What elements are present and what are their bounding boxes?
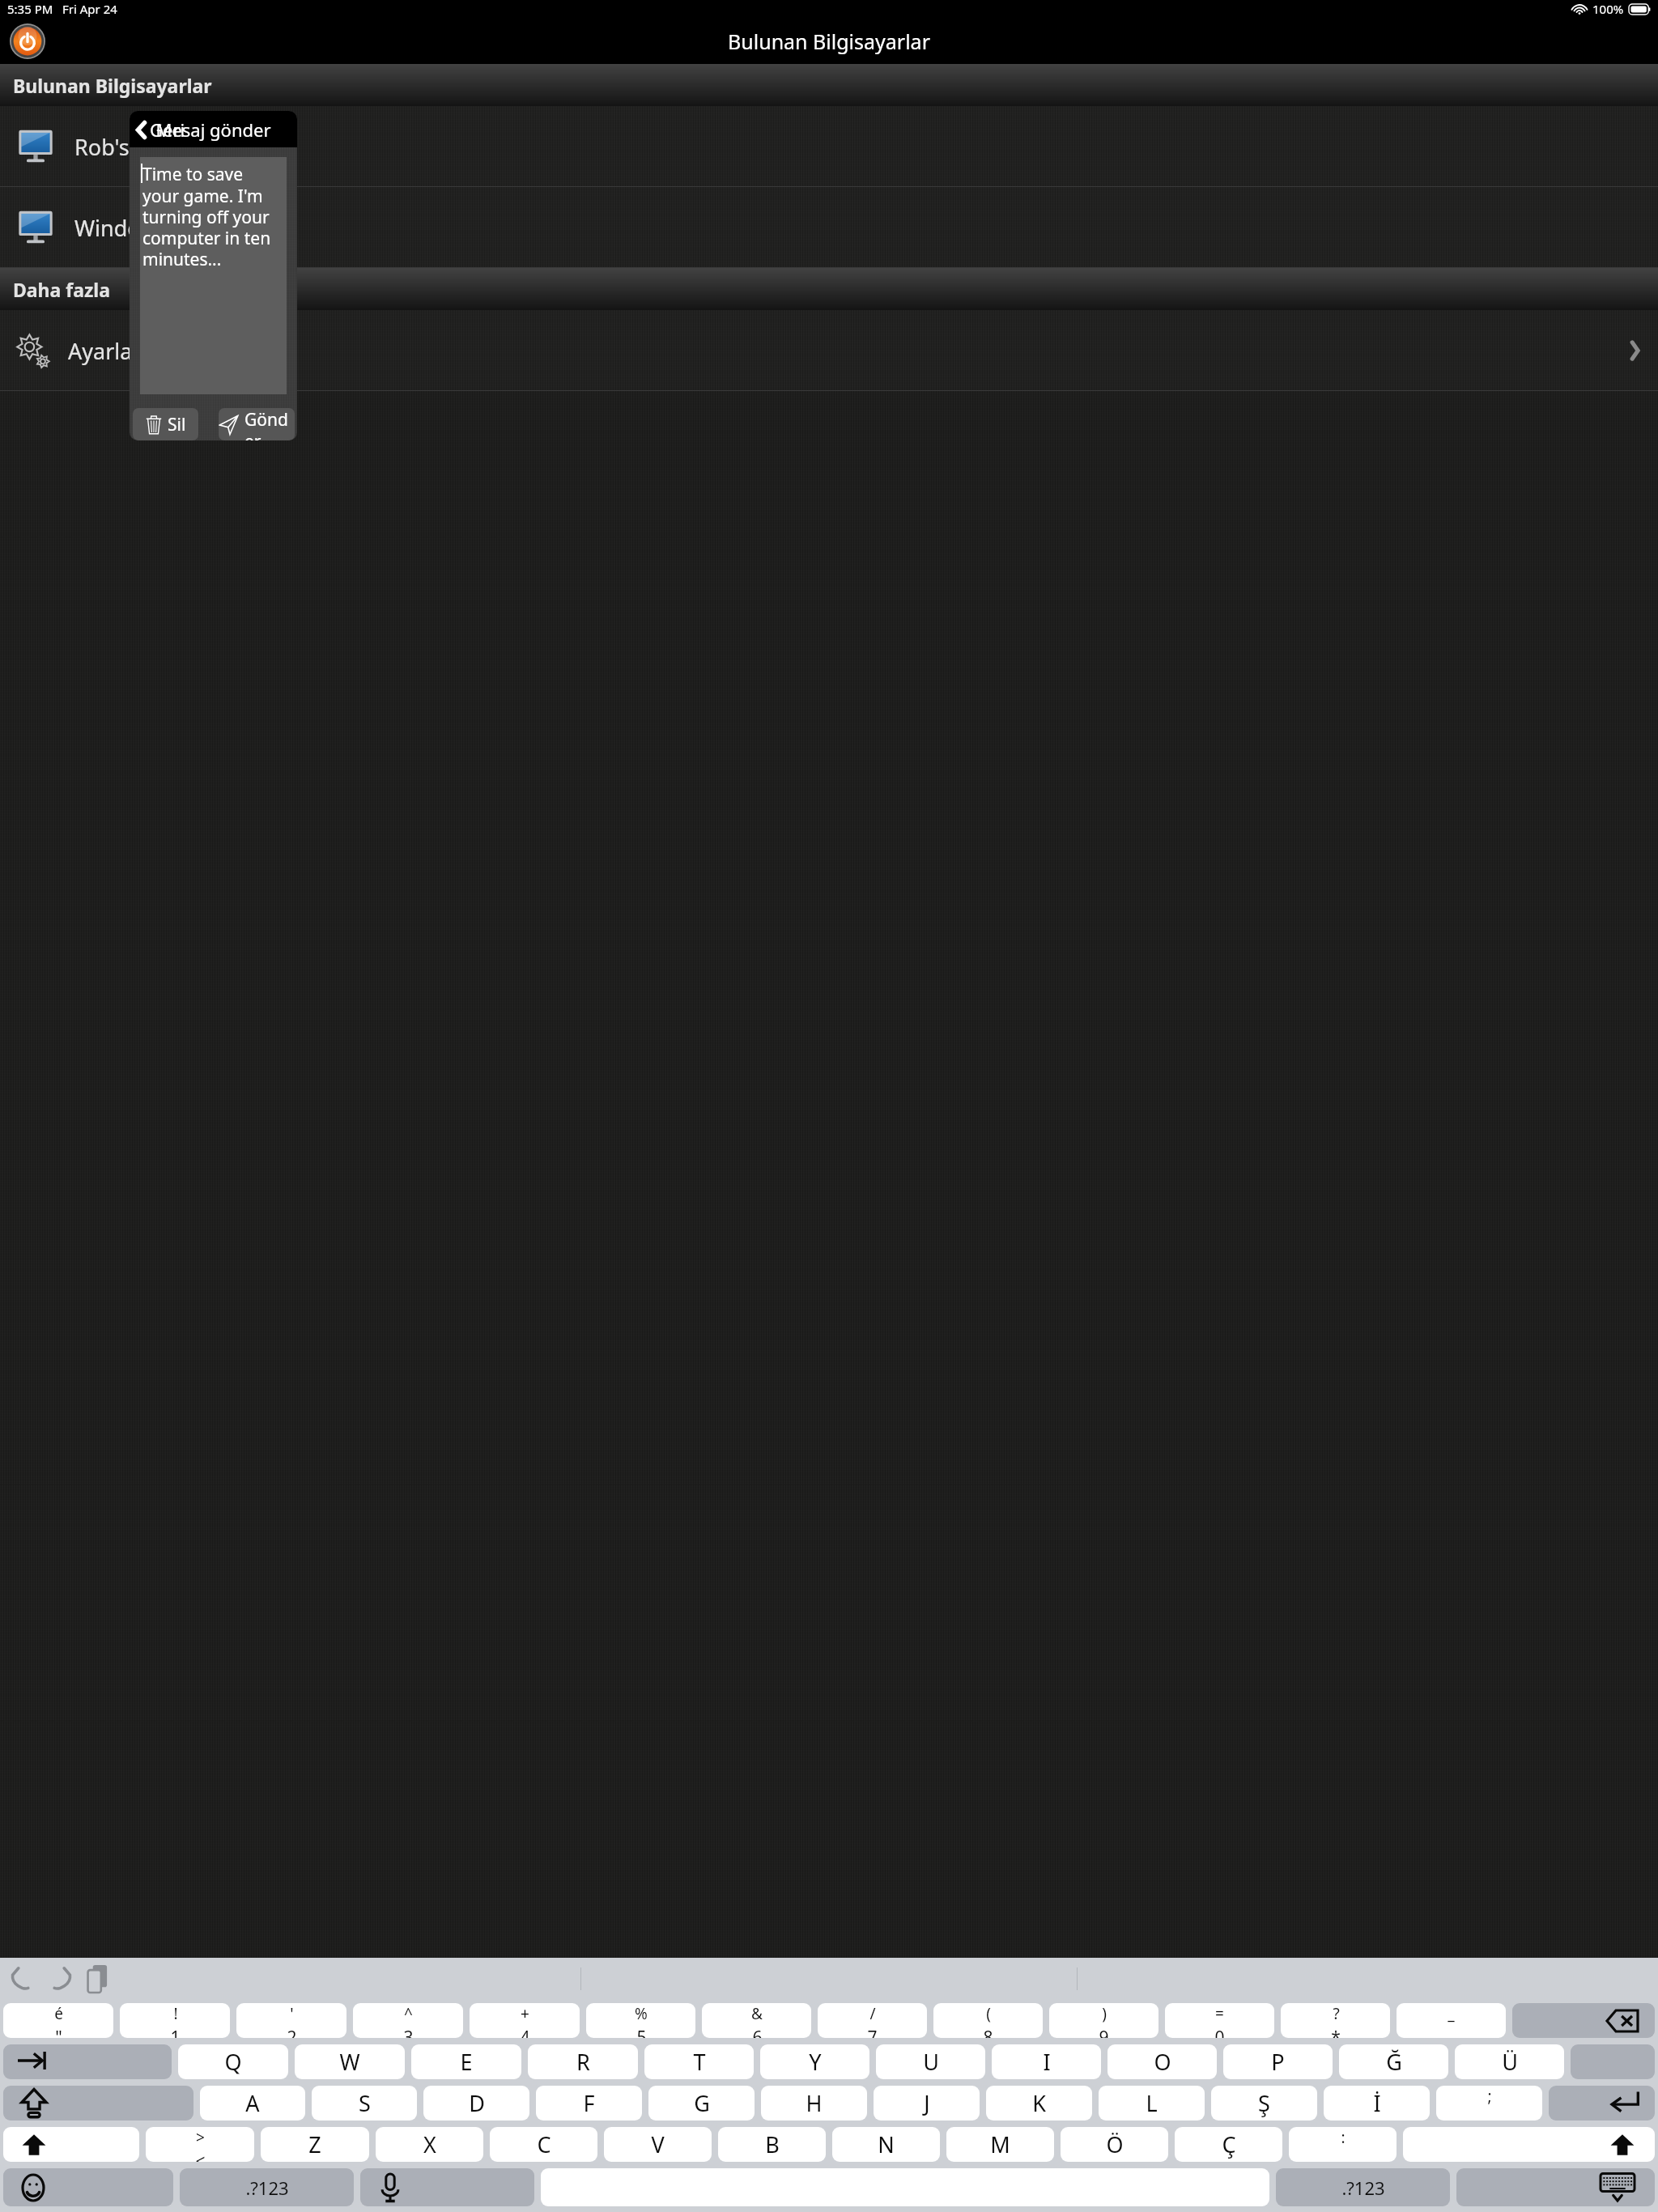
staticText: Y: [809, 2047, 822, 2077]
button[interactable]: [1571, 2044, 1655, 2079]
button[interactable]: >: [146, 2127, 254, 2162]
button[interactable]: ': [236, 2003, 346, 2038]
staticText: 9: [1099, 2026, 1109, 2038]
button[interactable]: F: [536, 2086, 642, 2121]
button[interactable]: C: [490, 2127, 597, 2162]
button[interactable]: E: [411, 2044, 521, 2079]
button[interactable]: Return: [1549, 2086, 1655, 2121]
button[interactable]: .?123: [1276, 2168, 1450, 2206]
button[interactable]: [541, 2168, 1269, 2206]
button[interactable]: Ç: [1175, 2127, 1282, 2162]
staticText: V: [651, 2129, 665, 2159]
button[interactable]: Undo: [11, 1967, 32, 1991]
button[interactable]: ?: [1281, 2003, 1390, 2038]
button[interactable]: .?123: [180, 2168, 354, 2206]
button[interactable]: I: [992, 2044, 1101, 2079]
button[interactable]: J: [874, 2086, 980, 2121]
button[interactable]: !: [120, 2003, 230, 2038]
button[interactable]: D: [423, 2086, 529, 2121]
staticText: *: [1331, 2026, 1341, 2038]
button[interactable]: İ: [1324, 2086, 1430, 2121]
button[interactable]: A: [200, 2086, 305, 2121]
other: Backspace: [1606, 2009, 1639, 2033]
staticText: P: [1271, 2047, 1285, 2077]
button[interactable]: Q: [178, 2044, 288, 2079]
button[interactable]: Emoji: [3, 2168, 173, 2206]
button[interactable]: Ş: [1211, 2086, 1317, 2121]
staticText: 5:35 PM: [7, 1, 53, 17]
button[interactable]: Ö: [1061, 2127, 1168, 2162]
button[interactable]: Redo: [50, 1967, 71, 1991]
staticText: !: [173, 2003, 178, 2024]
button[interactable]: ): [1049, 2003, 1158, 2038]
button[interactable]: Backspace: [1512, 2003, 1655, 2038]
staticText: Sil: [168, 413, 186, 436]
button[interactable]: /: [818, 2003, 927, 2038]
button[interactable]: +: [470, 2003, 580, 2038]
staticText: 5: [636, 2026, 647, 2038]
button[interactable]: =: [1165, 2003, 1274, 2038]
button[interactable]: Shift: [1403, 2127, 1655, 2162]
staticText: ': [290, 2003, 294, 2024]
staticText: Fri Apr 24: [62, 1, 117, 17]
staticText: O: [1154, 2047, 1171, 2077]
button[interactable]: é: [3, 2003, 113, 2038]
button[interactable]: M: [946, 2127, 1054, 2162]
staticText: 6: [752, 2026, 763, 2038]
button[interactable]: K: [986, 2086, 1092, 2121]
staticText: E: [460, 2047, 473, 2077]
button[interactable]: Gönder: [219, 408, 295, 440]
button[interactable]: (: [933, 2003, 1043, 2038]
staticText: X: [423, 2129, 436, 2159]
button[interactable]: Y: [760, 2044, 869, 2079]
button[interactable]: Windows 10 PC: [0, 187, 1658, 268]
button[interactable]: Power: [10, 23, 45, 59]
staticText: N: [878, 2129, 895, 2159]
button[interactable]: _: [1397, 2003, 1506, 2038]
button[interactable]: %: [586, 2003, 695, 2038]
button[interactable]: Dictate: [360, 2168, 534, 2206]
button[interactable]: S: [312, 2086, 417, 2121]
button[interactable]: Caps Lock: [3, 2086, 193, 2121]
staticText: Ö: [1106, 2129, 1124, 2159]
button[interactable]: Shift: [3, 2127, 139, 2162]
button[interactable]: N: [832, 2127, 940, 2162]
button[interactable]: X: [376, 2127, 483, 2162]
button[interactable]: O: [1107, 2044, 1217, 2079]
other: Caps Lock: [21, 2088, 47, 2119]
button[interactable]: Sil: [133, 408, 198, 440]
button[interactable]: Hide keyboard: [1456, 2168, 1655, 2206]
staticText: Daha fazla: [13, 277, 110, 302]
button[interactable]: V: [604, 2127, 712, 2162]
staticText: >: [196, 2127, 205, 2148]
staticText: J: [924, 2088, 930, 2118]
button[interactable]: G: [648, 2086, 755, 2121]
button[interactable]: Ayarlar: [0, 310, 1658, 391]
staticText: Ü: [1502, 2047, 1518, 2077]
button[interactable]: R: [528, 2044, 638, 2079]
button[interactable]: Time to save your game. I'm turning off …: [140, 157, 287, 394]
staticText: T: [693, 2047, 706, 2077]
staticText: D: [469, 2088, 485, 2118]
button[interactable]: &: [702, 2003, 811, 2038]
button[interactable]: ;: [1436, 2086, 1542, 2121]
button[interactable]: Rob's Retina iMac: [0, 106, 1658, 187]
button[interactable]: Geri: [134, 117, 185, 142]
button[interactable]: :: [1289, 2127, 1397, 2162]
button[interactable]: L: [1099, 2086, 1205, 2121]
button[interactable]: Ğ: [1339, 2044, 1448, 2079]
button[interactable]: P: [1223, 2044, 1333, 2079]
button[interactable]: Z: [261, 2127, 369, 2162]
button[interactable]: W: [295, 2044, 405, 2079]
button[interactable]: Tab: [3, 2044, 172, 2079]
button[interactable]: B: [718, 2127, 826, 2162]
button[interactable]: Paste: [87, 1965, 110, 1993]
button[interactable]: U: [876, 2044, 985, 2079]
button[interactable]: ^: [353, 2003, 463, 2038]
button[interactable]: T: [644, 2044, 754, 2079]
staticText: F: [583, 2088, 595, 2118]
staticText: 3: [403, 2026, 414, 2038]
button[interactable]: H: [761, 2086, 867, 2121]
button[interactable]: Ü: [1455, 2044, 1564, 2079]
